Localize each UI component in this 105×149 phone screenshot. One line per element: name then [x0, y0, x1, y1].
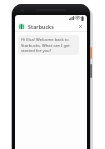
- button[interactable]: Close: [77, 23, 84, 30]
- staticText: Hi Elsa! Welcome back to Starbucks. What…: [21, 37, 76, 53]
- button[interactable]: Hi Elsa! Welcome back to Starbucks. What…: [18, 35, 79, 55]
- button[interactable]: Starbucks: [28, 23, 77, 30]
- button[interactable]: Starbucks app icon: [18, 23, 25, 30]
- staticText: Starbucks: [28, 23, 54, 30]
